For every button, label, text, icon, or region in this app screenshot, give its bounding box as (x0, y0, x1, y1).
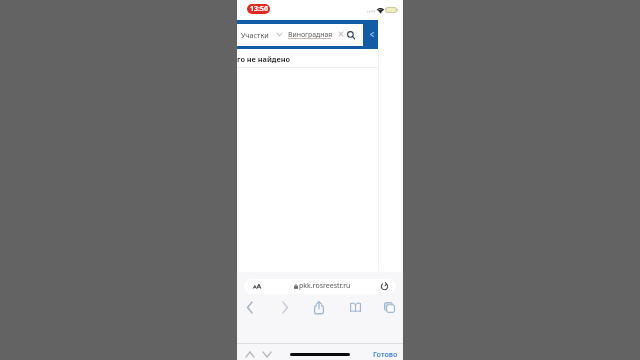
button[interactable]: Участки (239, 25, 284, 43)
staticText: 13:56 (250, 4, 268, 14)
button[interactable]: Tabs (378, 296, 400, 318)
button[interactable]: Next field (260, 347, 274, 360)
button[interactable]: Очистить (336, 26, 346, 42)
button[interactable]: Reload (380, 281, 389, 292)
button[interactable]: Виноградная (286, 25, 336, 43)
button[interactable]: Share (308, 296, 330, 318)
button[interactable]: Готово (373, 349, 398, 359)
button[interactable]: Bookmarks (344, 296, 366, 318)
button[interactable]: Искать (345, 26, 357, 42)
button[interactable]: Forward (274, 296, 296, 318)
button[interactable]: Back (239, 296, 261, 318)
button[interactable]: Previous field (243, 347, 257, 360)
staticText: Виноградная (288, 30, 333, 39)
staticText: го не найдено (237, 54, 291, 64)
button[interactable]: Back (366, 26, 378, 42)
staticText: Участки (241, 30, 269, 40)
staticText: pkk.rosreestr.ru (299, 281, 351, 291)
button[interactable]: pkk.rosreestr.ru (244, 279, 396, 294)
